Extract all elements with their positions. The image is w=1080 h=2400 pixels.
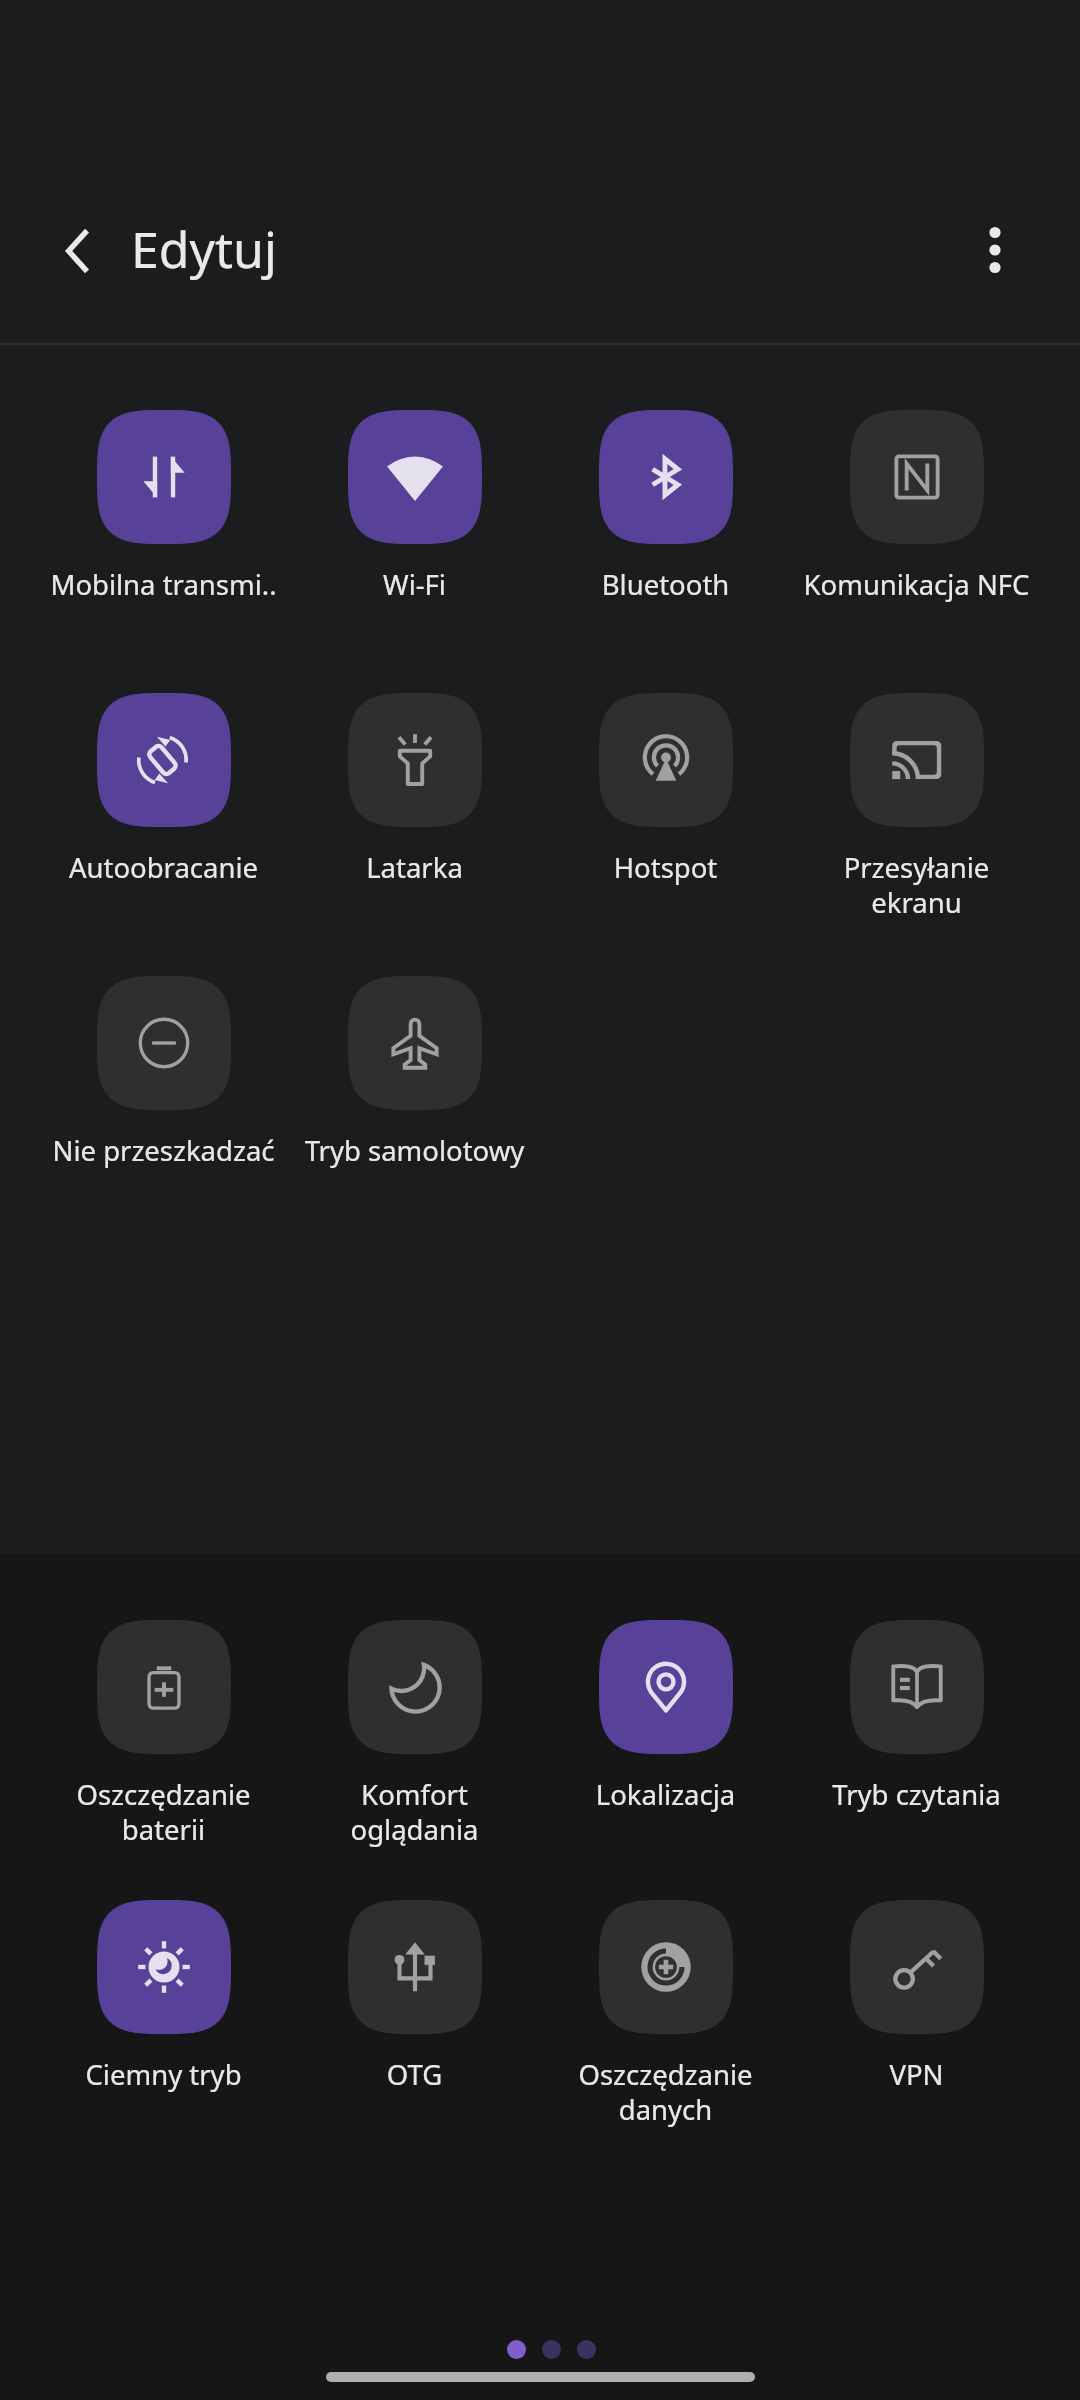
staticText: Komunikacja NFC [791,566,1042,603]
staticText: OTG [289,2056,540,2093]
button[interactable]: Wi-Fi [289,410,540,603]
button[interactable]: Bluetooth [540,410,791,603]
staticText: Nie przeszkadzać [38,1132,289,1169]
staticText: Hotspot [540,849,791,886]
staticText: VPN [791,2056,1042,2093]
button[interactable]: Nie przeszkadzać [38,976,289,1169]
button[interactable]: Przesyłanie ekranu [791,693,1042,922]
button[interactable]: Komfort oglądania [289,1620,540,1849]
button[interactable]: Tryb samolotowy [289,976,540,1169]
staticText: Latarka [289,849,540,886]
button[interactable]: OTG [289,1900,540,2093]
button[interactable]: VPN [791,1900,1042,2093]
staticText: Tryb samolotowy [289,1132,540,1169]
button[interactable]: Komunikacja NFC [791,410,1042,603]
button[interactable]: Back [33,208,118,293]
button[interactable]: Oszczędzanie baterii [38,1620,289,1849]
staticText: Oszczędzanie danych [540,2056,791,2129]
staticText: Wi-Fi [289,566,540,603]
staticText: Bluetooth [540,566,791,603]
staticText: Autoobracanie [38,849,289,886]
button[interactable]: Hotspot [540,693,791,886]
staticText: Lokalizacja [540,1776,791,1813]
staticText: Przesyłanie ekranu [791,849,1042,922]
staticText: Mobilna transmi.. [38,566,289,603]
button[interactable]: Oszczędzanie danych [540,1900,791,2129]
button[interactable]: Ciemny tryb [38,1900,289,2093]
staticText: Tryb czytania [791,1776,1042,1813]
staticText: Edytuj [131,215,277,283]
button[interactable]: Mobilna transmi.. [38,410,289,603]
staticText: Oszczędzanie baterii [38,1776,289,1849]
button[interactable]: Lokalizacja [540,1620,791,1813]
button[interactable]: Tryb czytania [791,1620,1042,1813]
button[interactable]: Autoobracanie [38,693,289,886]
button[interactable]: Latarka [289,693,540,886]
staticText: Ciemny tryb [38,2056,289,2093]
staticText: Komfort oglądania [289,1776,540,1849]
button[interactable]: More options [955,210,1035,290]
